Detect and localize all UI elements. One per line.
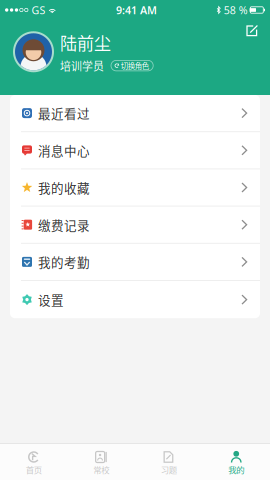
staticText: 缴费记录: [38, 216, 90, 234]
button[interactable]: 编辑资料: [246, 25, 258, 37]
staticText: 首页: [26, 463, 42, 476]
button[interactable]: 常校: [67, 444, 135, 480]
button[interactable]: 缴费记录: [10, 207, 260, 244]
button[interactable]: 我的考勤: [10, 244, 260, 281]
button[interactable]: 我的: [202, 444, 270, 480]
staticText: 切换角色: [121, 60, 149, 71]
staticText: 我的考勤: [38, 253, 90, 271]
staticText: GS: [31, 3, 45, 17]
staticText: 最近看过: [38, 104, 90, 122]
staticText: 习题: [161, 463, 177, 476]
staticText: 58 %: [224, 3, 248, 17]
staticText: 我的: [228, 463, 244, 476]
staticText: 陆前尘: [60, 30, 111, 55]
button[interactable]: 习题: [135, 444, 202, 480]
button[interactable]: 设置: [10, 281, 260, 318]
button[interactable]: 我的收藏: [10, 169, 260, 207]
staticText: 我的收藏: [38, 178, 90, 196]
button[interactable]: 切换角色: [111, 60, 153, 71]
staticText: 消息中心: [38, 141, 90, 159]
button[interactable]: 消息中心: [10, 132, 260, 169]
staticText: 9:41 AM: [116, 3, 157, 17]
staticText: 培训学员: [60, 58, 104, 73]
button[interactable]: 首页: [0, 444, 67, 480]
button[interactable]: 最近看过: [10, 95, 260, 132]
staticText: 设置: [38, 290, 64, 309]
staticText: 常校: [93, 463, 109, 476]
